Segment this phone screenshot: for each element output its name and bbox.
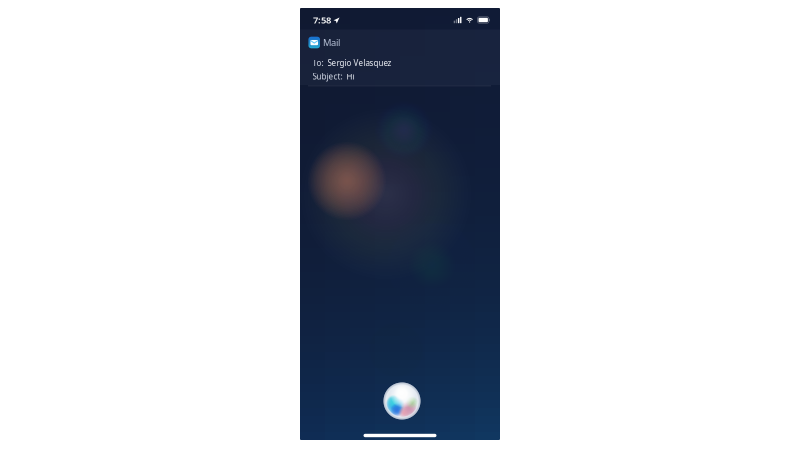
staticText: To:	[312, 58, 323, 68]
staticText: 7:58	[313, 14, 331, 26]
button[interactable]: Mail	[300, 32, 500, 86]
staticText: Subject:	[312, 71, 342, 82]
button[interactable]: Siri	[383, 382, 420, 419]
staticText: Mail	[323, 36, 340, 49]
staticText: Sergio Velasquez	[327, 58, 391, 68]
staticText: Hi	[346, 71, 354, 82]
